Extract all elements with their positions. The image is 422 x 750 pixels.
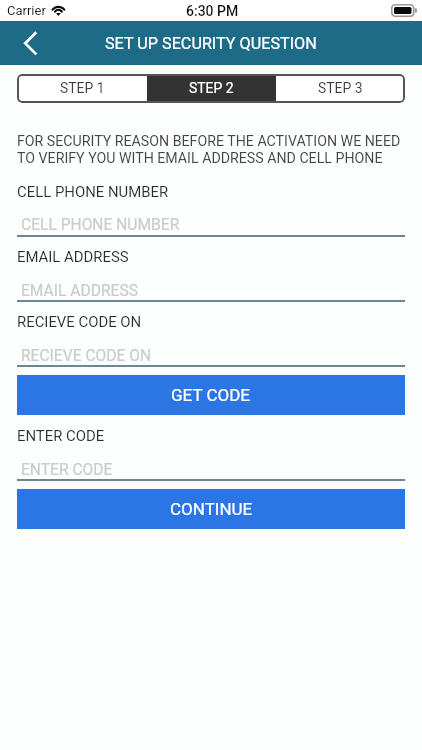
staticText: CELL PHONE NUMBER — [17, 183, 169, 200]
button[interactable]: CELL PHONE NUMBER — [21, 216, 180, 234]
button[interactable]: GET CODE — [17, 375, 405, 415]
staticText: STEP 1 — [60, 80, 105, 96]
button[interactable]: STEP 2 — [147, 74, 276, 103]
button[interactable]: RECIEVE CODE ON — [21, 347, 152, 365]
staticText: GET CODE — [171, 385, 251, 405]
staticText: EMAIL ADDRESS — [17, 248, 129, 265]
staticText: ENTER CODE — [17, 427, 105, 444]
staticText: STEP 3 — [318, 80, 363, 96]
staticText: 6:30 PM — [186, 3, 239, 19]
staticText: Carrier — [7, 3, 46, 18]
staticText: STEP 2 — [189, 80, 234, 96]
staticText: RECIEVE CODE ON — [17, 313, 142, 330]
button[interactable]: STEP 3 — [276, 74, 405, 103]
staticText: SET UP SECURITY QUESTION — [105, 34, 317, 53]
button[interactable]: EMAIL ADDRESS — [21, 282, 138, 300]
button[interactable]: ENTER CODE — [21, 461, 113, 479]
button[interactable]: CONTINUE — [17, 489, 405, 529]
button[interactable]: STEP 1 — [17, 74, 147, 103]
staticText: FOR SECURITY REASON BEFORE THE ACTIVATIO… — [17, 133, 401, 166]
button[interactable]: Back — [9, 28, 41, 58]
staticText: CONTINUE — [170, 499, 253, 519]
